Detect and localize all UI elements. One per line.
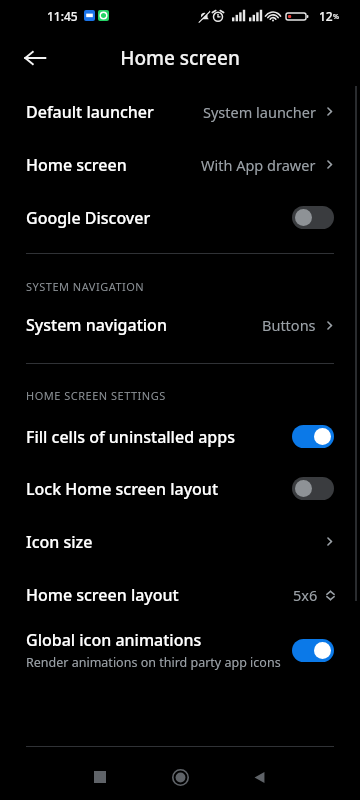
staticText: Global icon animations bbox=[26, 629, 202, 651]
button[interactable]: Fill cells of uninstalled apps bbox=[0, 411, 360, 462]
staticText: System navigation bbox=[26, 314, 167, 336]
button[interactable]: Icon size bbox=[0, 515, 360, 568]
button[interactable]: Recents bbox=[80, 757, 120, 797]
button[interactable]: Toggle off bbox=[292, 477, 334, 500]
button[interactable]: Google Discover bbox=[0, 191, 360, 244]
button[interactable]: Toggle on bbox=[292, 639, 334, 662]
staticText: 5x6 bbox=[293, 585, 318, 605]
staticText: Google Discover bbox=[26, 207, 151, 229]
staticText: % bbox=[333, 12, 339, 22]
staticText: 11:45 bbox=[47, 8, 78, 24]
staticText: Render animations on third party app ico… bbox=[26, 654, 281, 671]
staticText: HOME SCREEN SETTINGS bbox=[26, 388, 166, 403]
staticText: Icon size bbox=[26, 531, 93, 553]
button[interactable]: Lock Home screen layout bbox=[0, 462, 360, 515]
staticText: Home screen layout bbox=[26, 584, 179, 606]
staticText: Lock Home screen layout bbox=[26, 478, 219, 500]
button[interactable]: Home screen layout bbox=[0, 568, 360, 622]
button[interactable]: Home bbox=[160, 757, 200, 797]
staticText: SYSTEM NAVIGATION bbox=[26, 279, 145, 294]
staticText: 12 bbox=[319, 8, 333, 24]
staticText: Home screen bbox=[0, 45, 360, 71]
staticText: Fill cells of uninstalled apps bbox=[26, 426, 235, 448]
button[interactable]: Back bbox=[14, 37, 56, 79]
button[interactable]: Toggle on bbox=[292, 425, 334, 448]
staticText: With App drawer bbox=[201, 155, 316, 175]
staticText: System launcher bbox=[203, 102, 316, 122]
staticText: Buttons bbox=[262, 315, 316, 335]
button[interactable]: Home screen bbox=[0, 138, 360, 191]
staticText: Home screen bbox=[26, 154, 127, 176]
button[interactable]: Default launcher bbox=[0, 85, 360, 138]
button[interactable]: System navigation bbox=[0, 302, 360, 348]
button[interactable]: Global icon animations bbox=[0, 622, 360, 678]
button[interactable]: Toggle off bbox=[292, 206, 334, 229]
staticText: Default launcher bbox=[26, 101, 154, 123]
button[interactable]: Back bbox=[239, 757, 279, 797]
